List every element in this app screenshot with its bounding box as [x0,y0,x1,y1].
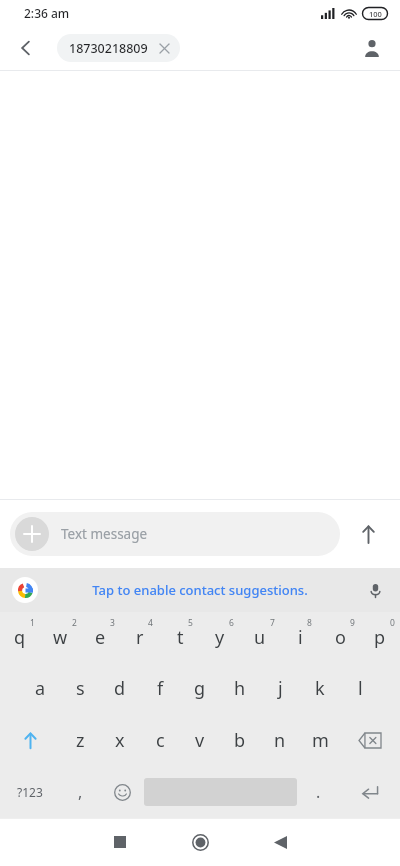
button[interactable]: Attach [15,517,49,551]
button[interactable]: a [20,663,60,714]
button[interactable]: Enter [340,766,400,818]
staticText: 3 [110,617,115,629]
staticText: 100 [369,9,382,19]
staticText: 7 [270,617,275,629]
staticText: d [114,676,126,701]
button[interactable]: i [280,612,320,663]
button[interactable]: f [140,663,180,714]
button[interactable]: n [260,714,300,766]
staticText: 4 [148,617,153,629]
button[interactable]: q [0,612,40,663]
staticText: n [274,728,286,753]
button[interactable]: Shift [0,714,60,766]
button[interactable]: l [340,663,380,714]
button[interactable]: , [59,766,101,818]
button[interactable]: w [40,612,80,663]
button[interactable]: Backspace [340,714,400,766]
button[interactable]: Home [160,818,240,866]
button[interactable]: Back [240,818,320,866]
staticText: 2:36 am [24,5,70,21]
button[interactable]: m [300,714,340,766]
staticText: 6 [229,617,234,629]
staticText: t [177,625,184,650]
button[interactable]: Emoji [101,766,144,818]
button[interactable]: . [297,766,340,818]
staticText: b [234,728,246,753]
staticText: 5 [188,617,193,629]
staticText: i [298,625,303,650]
staticText: v [195,728,205,753]
button[interactable]: Send [346,512,390,556]
staticText: y [215,625,225,650]
staticText: u [254,625,266,650]
button[interactable]: d [100,663,140,714]
button[interactable]: Remove recipient [156,40,172,56]
staticText: e [95,625,106,650]
button[interactable]: s [60,663,100,714]
button[interactable]: v [180,714,220,766]
button[interactable]: z [60,714,100,766]
button[interactable]: x [100,714,140,766]
staticText: 9 [350,617,355,629]
button[interactable]: k [300,663,340,714]
staticText: Tap to enable contact suggestions. [92,581,308,599]
staticText: 18730218809 [69,40,148,57]
button[interactable]: Recents [80,818,160,866]
staticText: . [316,781,321,803]
button[interactable]: g [180,663,220,714]
staticText: 1 [30,617,35,629]
button[interactable]: Tap to enable contact suggestions. [0,568,400,612]
staticText: 8 [307,617,312,629]
staticText: k [315,676,325,701]
staticText: p [374,625,386,650]
staticText: f [157,676,164,701]
button[interactable]: e [80,612,120,663]
button[interactable]: Voice input [360,575,390,605]
staticText: 0 [390,617,395,629]
staticText: j [278,676,283,701]
staticText: , [78,781,83,803]
button[interactable]: t [160,612,200,663]
button[interactable]: p [360,612,400,663]
button[interactable]: y [200,612,240,663]
staticText: l [358,676,363,701]
staticText: g [194,676,206,701]
staticText: s [76,676,85,701]
staticText: a [35,676,46,701]
button[interactable]: h [220,663,260,714]
button[interactable]: Back [6,28,46,68]
button[interactable]: ?123 [0,766,59,818]
button[interactable]: o [320,612,360,663]
staticText: h [234,676,246,701]
button[interactable]: j [260,663,300,714]
button[interactable]: u [240,612,280,663]
button[interactable]: Attach [10,512,340,556]
staticText: o [335,625,346,650]
staticText: z [76,728,85,753]
staticText: c [156,728,165,753]
staticText: ?123 [17,784,43,800]
staticText: x [115,728,125,753]
button[interactable]: r [120,612,160,663]
button[interactable]: Contact [352,28,392,68]
staticText: Text message [61,525,148,543]
button[interactable]: c [140,714,180,766]
button[interactable]: b [220,714,260,766]
staticText: r [136,625,144,650]
button[interactable]: 18730218809 [57,34,180,62]
staticText: w [53,625,68,650]
staticText: q [14,625,26,650]
staticText: m [312,728,329,753]
staticText: 2 [72,617,77,629]
